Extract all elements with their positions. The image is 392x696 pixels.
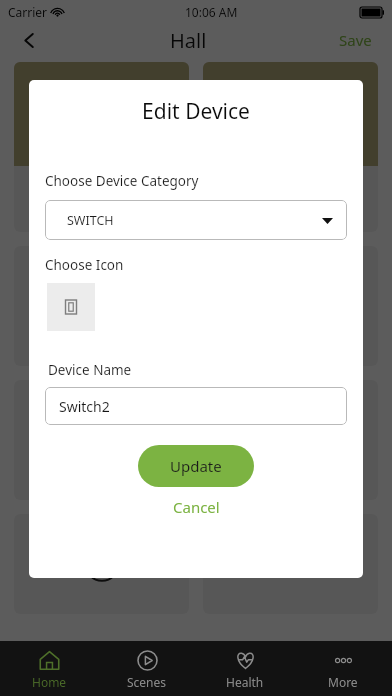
staticText: More (328, 674, 358, 690)
staticText: Switch2 (59, 397, 110, 416)
button[interactable]: Scenes (98, 641, 196, 696)
button[interactable] (14, 62, 189, 232)
button[interactable] (203, 246, 378, 366)
staticText: Health (226, 674, 264, 690)
staticText: Carrier (8, 4, 48, 20)
staticText: SWITCH (67, 212, 114, 229)
staticText: Save (339, 30, 372, 50)
staticText: Home (32, 674, 67, 690)
staticText: Cancel (173, 497, 220, 517)
button[interactable]: Home (0, 641, 98, 696)
staticText: Update (170, 456, 222, 476)
staticText: Device Name (48, 361, 132, 379)
staticText: 10:06 AM (185, 4, 238, 20)
button[interactable] (14, 514, 189, 614)
button[interactable]: Health (196, 641, 294, 696)
button[interactable]: Switch icon (47, 283, 95, 331)
button[interactable] (203, 514, 378, 614)
button[interactable]: Save (335, 26, 376, 54)
button[interactable]: More (294, 641, 392, 696)
button[interactable] (203, 380, 378, 500)
button[interactable]: Back (16, 27, 42, 53)
button[interactable] (203, 62, 378, 232)
button[interactable] (14, 380, 189, 500)
staticText: Scenes (127, 674, 167, 690)
button[interactable]: SWITCH (45, 200, 347, 240)
button[interactable]: Cancel (159, 494, 234, 520)
staticText: Hall (170, 27, 207, 54)
staticText: Edit Device (29, 97, 363, 126)
button[interactable] (14, 246, 189, 366)
staticText: Choose Device Category (45, 172, 199, 190)
button[interactable]: Switch2 (45, 387, 347, 425)
button[interactable]: Update (138, 445, 254, 487)
staticText: Choose Icon (45, 256, 124, 274)
